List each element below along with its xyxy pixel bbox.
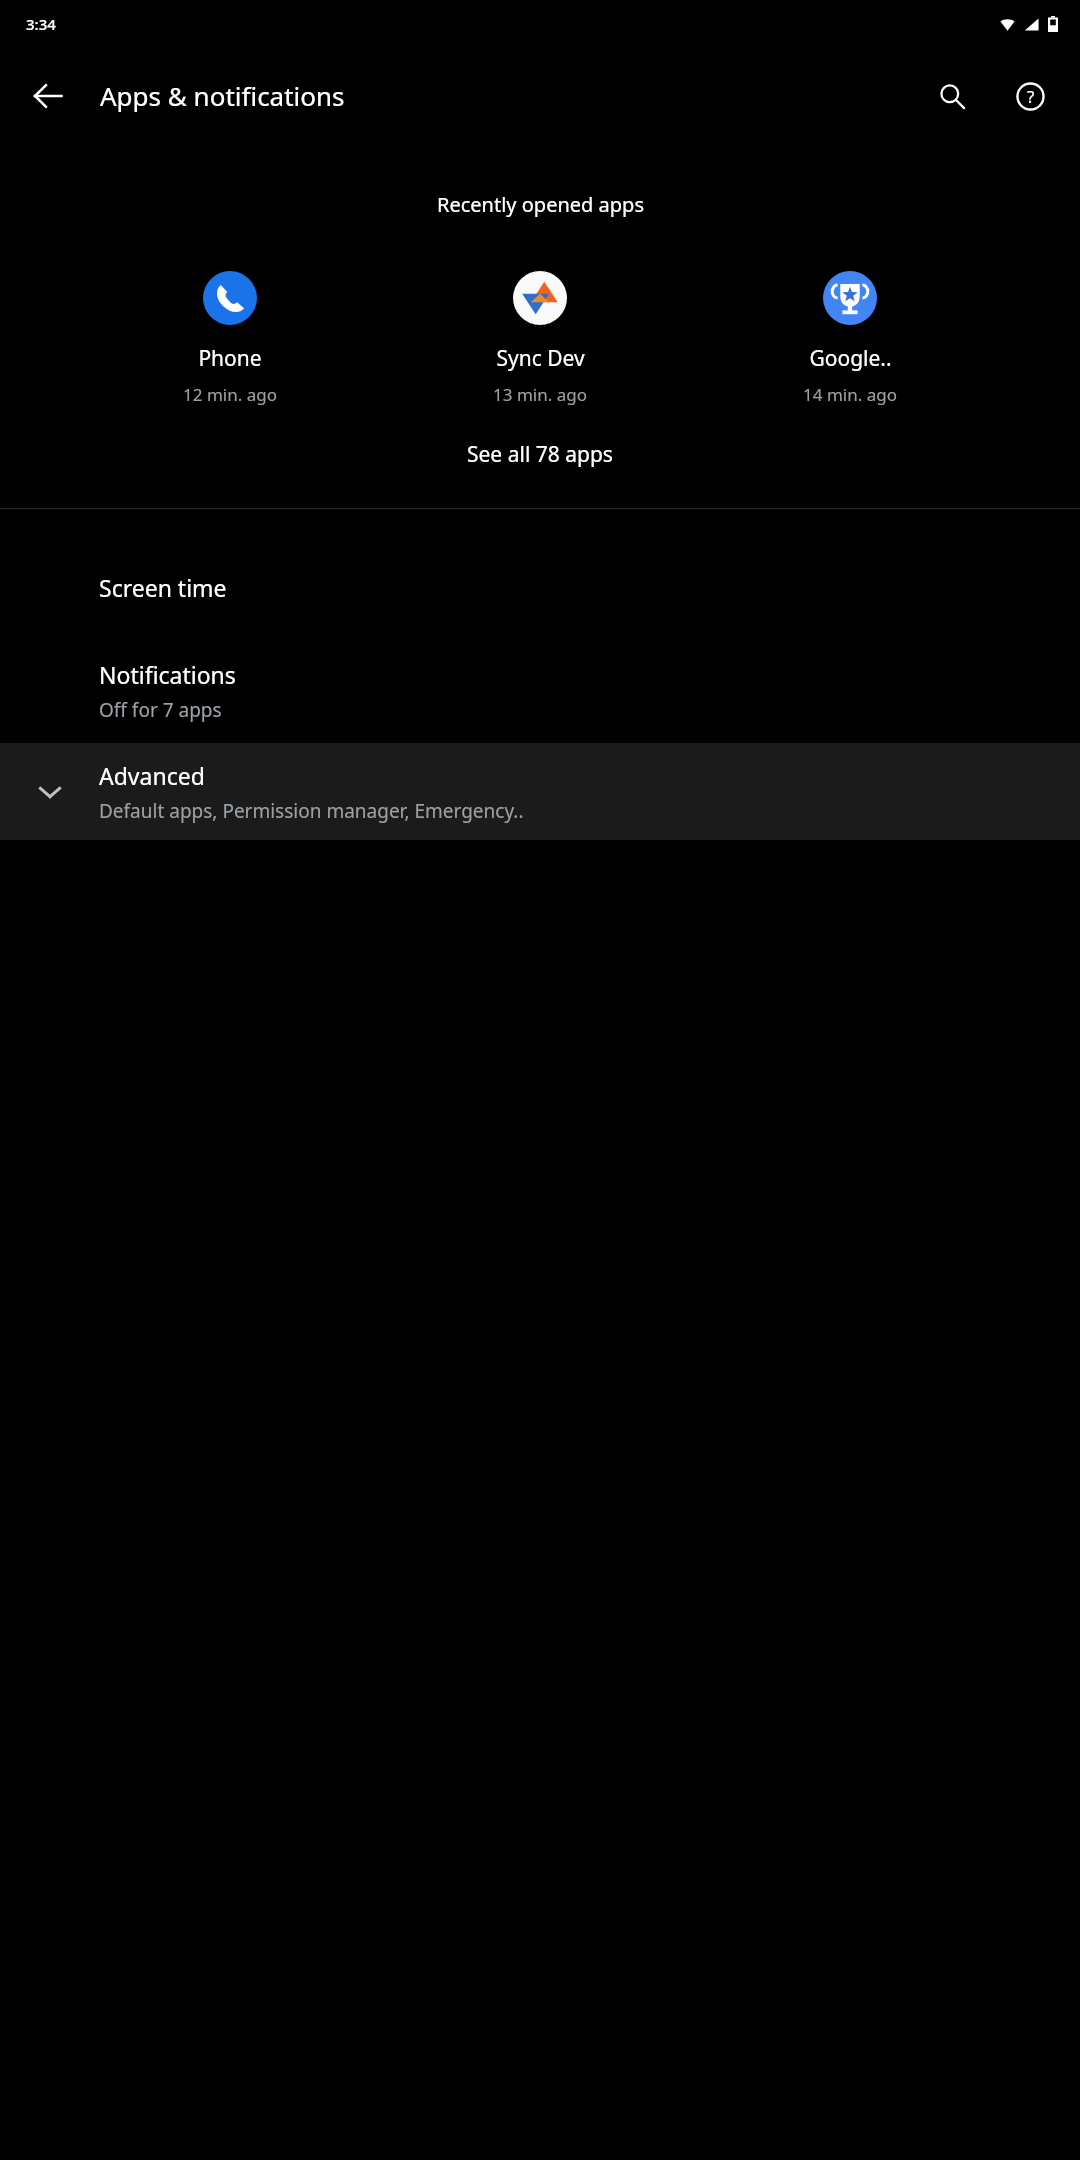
staticText: 3:34 bbox=[26, 14, 56, 34]
button[interactable]: Back bbox=[20, 68, 76, 124]
staticText: Phone bbox=[198, 344, 262, 373]
staticText: Google.. bbox=[809, 344, 892, 373]
staticText: 12 min. ago bbox=[183, 383, 277, 406]
staticText: ? bbox=[1027, 85, 1035, 108]
button[interactable]: Sync Dev bbox=[460, 271, 620, 406]
staticText: Off for 7 apps bbox=[99, 697, 222, 723]
staticText: Sync Dev bbox=[496, 344, 585, 373]
staticText: Screen time bbox=[99, 572, 227, 603]
staticText: Apps & notifications bbox=[100, 78, 345, 113]
button[interactable]: Notifications bbox=[0, 639, 1080, 743]
staticText: 14 min. ago bbox=[803, 383, 897, 406]
staticText: 13 min. ago bbox=[493, 383, 587, 406]
button[interactable]: Search bbox=[924, 68, 980, 124]
button[interactable]: Phone bbox=[150, 271, 310, 406]
staticText: Recently opened apps bbox=[437, 191, 644, 218]
button[interactable]: Advanced bbox=[0, 743, 1080, 840]
button[interactable]: Google.. bbox=[770, 271, 930, 406]
button[interactable]: Screen time bbox=[0, 535, 1080, 639]
staticText: Notifications bbox=[99, 659, 236, 690]
button[interactable]: Help bbox=[1002, 68, 1058, 124]
button[interactable]: See all 78 apps bbox=[0, 406, 1080, 502]
staticText: See all 78 apps bbox=[467, 440, 613, 469]
staticText: Default apps, Permission manager, Emerge… bbox=[99, 798, 524, 824]
staticText: Advanced bbox=[99, 760, 205, 791]
